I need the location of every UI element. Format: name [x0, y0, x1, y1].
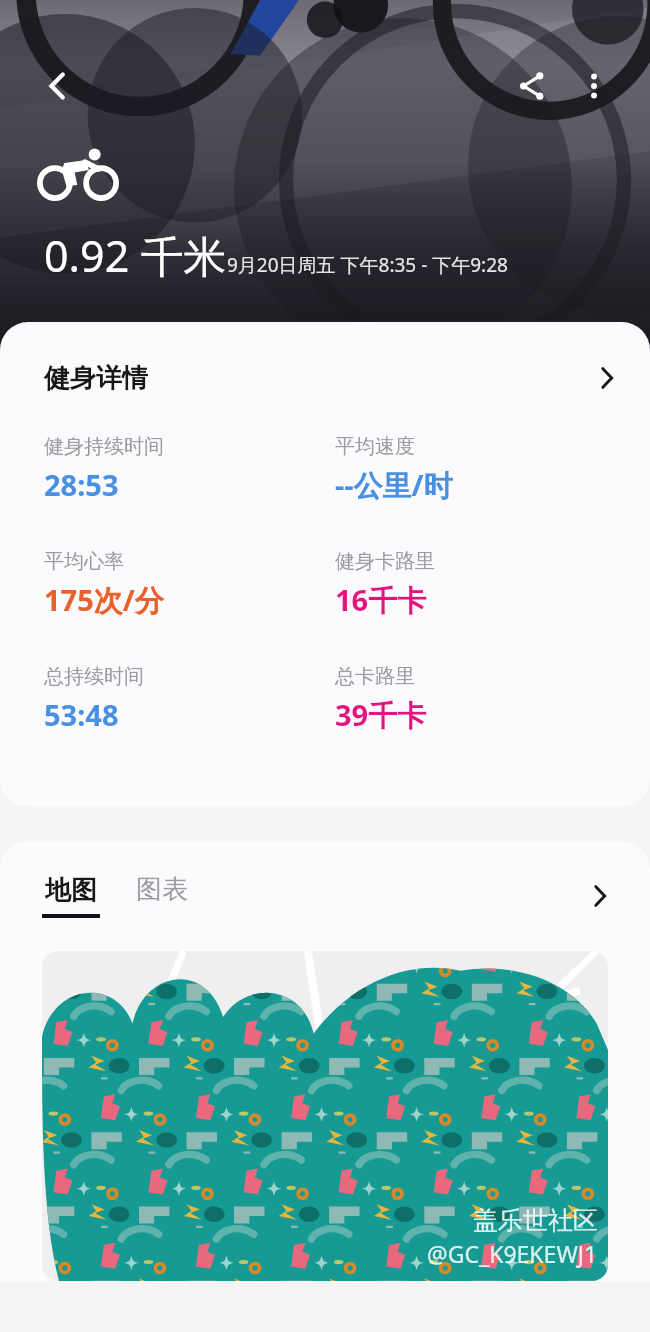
staticText: 9月20日周五 下午8:35 - 下午9:28 — [227, 252, 508, 278]
staticText: 28:53 — [44, 465, 119, 504]
staticText: 平均心率 — [44, 549, 124, 574]
button[interactable]: 地图 — [42, 874, 100, 918]
staticText: @GC_K9EKEWJ1 — [427, 1238, 598, 1269]
staticText: 39千卡 — [335, 695, 427, 735]
button[interactable]: Expand map — [576, 872, 624, 920]
staticText: 0.92 千米 — [44, 226, 227, 285]
staticText: 健身卡路里 — [335, 549, 435, 574]
button[interactable]: Back — [30, 58, 86, 114]
staticText: 平均速度 — [335, 434, 415, 459]
staticText: 盖乐世社区 — [473, 1205, 598, 1236]
staticText: 地图 — [45, 874, 97, 907]
staticText: 总持续时间 — [44, 664, 144, 689]
staticText: 53:48 — [44, 695, 119, 734]
staticText: --公里/时 — [335, 465, 453, 505]
staticText: 图表 — [136, 873, 188, 906]
staticText: 175次/分 — [44, 580, 164, 620]
button[interactable]: More options — [566, 58, 622, 114]
staticText: 16千卡 — [335, 580, 427, 620]
staticText: 健身持续时间 — [44, 434, 164, 459]
button[interactable]: 健身详情 — [0, 322, 650, 434]
staticText: 总卡路里 — [335, 664, 415, 689]
staticText: 健身详情 — [44, 362, 148, 395]
button[interactable]: 盖乐世社区 — [42, 951, 608, 1281]
button[interactable]: Share — [504, 58, 560, 114]
button[interactable]: 图表 — [136, 880, 188, 913]
